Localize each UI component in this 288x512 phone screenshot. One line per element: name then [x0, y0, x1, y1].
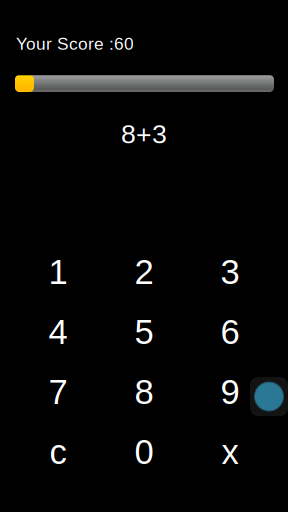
staticText: 8+3 [121, 119, 167, 149]
button[interactable]: 4 [15, 302, 101, 362]
staticText: 4 [48, 313, 67, 351]
staticText: 6 [220, 313, 239, 351]
button[interactable]: 2 [101, 242, 187, 302]
button[interactable]: 9 [187, 362, 273, 422]
staticText: 2 [134, 253, 153, 291]
staticText: 1 [48, 253, 67, 291]
button[interactable]: 5 [101, 302, 187, 362]
button[interactable]: 1 [15, 242, 101, 302]
button[interactable]: 7 [15, 362, 101, 422]
button[interactable]: Enter answer [250, 377, 288, 416]
staticText: x [221, 433, 238, 471]
button[interactable]: 0 [101, 422, 187, 482]
staticText: c [49, 433, 66, 471]
staticText: 5 [134, 313, 153, 351]
staticText: 7 [48, 373, 67, 411]
button[interactable]: 8 [101, 362, 187, 422]
button[interactable]: c [15, 422, 101, 482]
button[interactable]: 3 [187, 242, 273, 302]
staticText: 0 [134, 433, 153, 471]
staticText: 9 [220, 373, 239, 411]
button[interactable]: 6 [187, 302, 273, 362]
staticText: 8 [134, 373, 153, 411]
button[interactable]: x [187, 422, 273, 482]
staticText: 3 [220, 253, 239, 291]
staticText: Your Score :60 [16, 34, 134, 53]
